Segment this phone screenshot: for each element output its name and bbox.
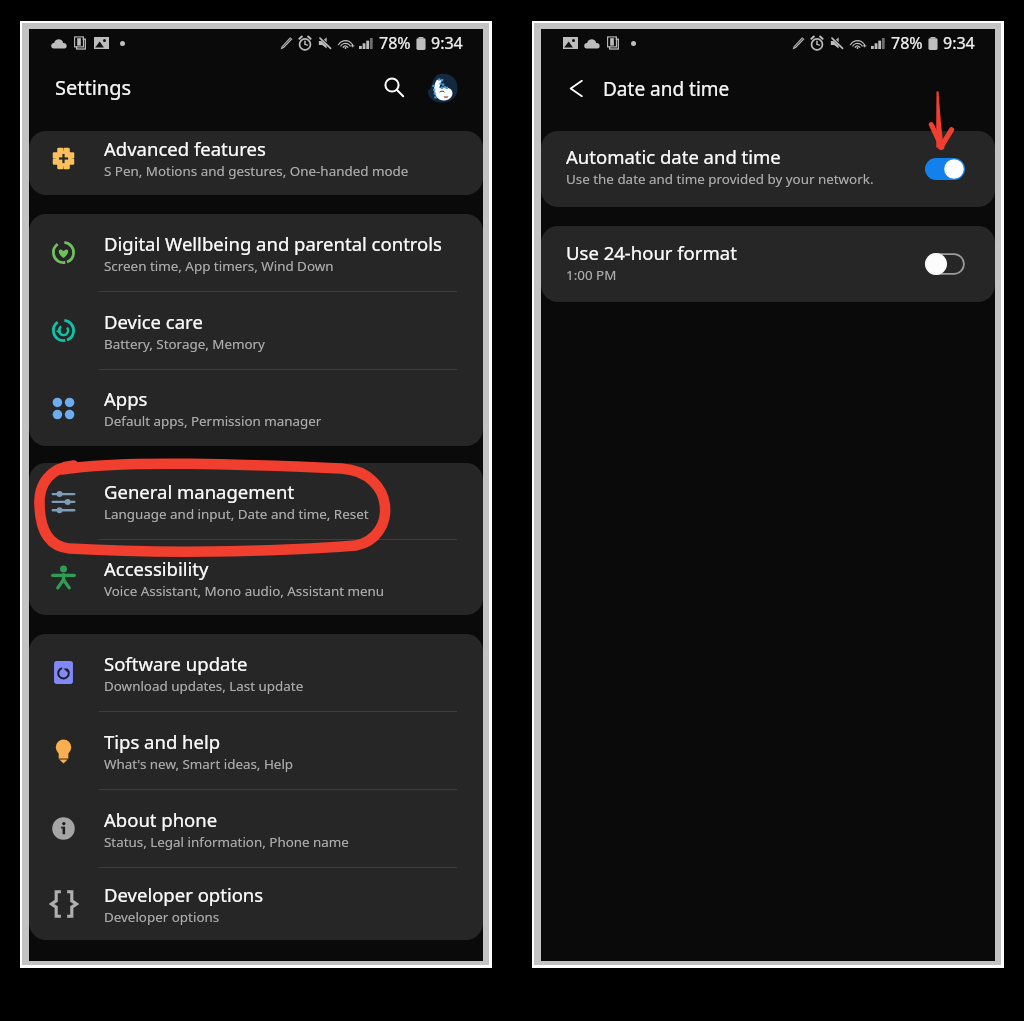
staticText: What's new, Smart ideas, Help <box>104 755 294 773</box>
staticText: Developer options <box>104 882 264 907</box>
staticText: 78% <box>891 32 923 54</box>
staticText: Use the date and time provided by your n… <box>566 170 874 188</box>
button[interactable]: Date and time <box>603 65 753 113</box>
button[interactable]: Back <box>552 64 600 112</box>
button[interactable]: Switch on <box>925 158 965 180</box>
staticText: Accessibility <box>104 556 209 581</box>
staticText: 9:34 <box>943 32 975 54</box>
button[interactable]: Search <box>370 63 418 111</box>
staticText: Device care <box>104 309 203 334</box>
staticText: Advanced features <box>104 136 266 161</box>
staticText: Settings <box>55 74 132 101</box>
button[interactable]: Software update <box>29 634 483 711</box>
button[interactable]: Tips and help <box>29 712 483 789</box>
staticText: About phone <box>104 807 218 832</box>
staticText: Digital Wellbeing and parental controls <box>104 231 442 256</box>
staticText: Default apps, Permission manager <box>104 412 322 430</box>
staticText: Download updates, Last update <box>104 677 304 695</box>
staticText: Screen time, App timers, Wind Down <box>104 257 334 275</box>
button[interactable]: About phone <box>29 790 483 867</box>
staticText: Automatic date and time <box>566 144 781 169</box>
button[interactable]: Accessibility <box>29 540 483 615</box>
staticText: 78% <box>379 32 411 54</box>
staticText: Software update <box>104 651 248 676</box>
staticText: Apps <box>104 386 148 411</box>
button[interactable]: Device care <box>29 292 483 369</box>
button[interactable]: Use 24-hour format <box>566 226 965 302</box>
staticText: 9:34 <box>431 32 463 54</box>
button[interactable]: Developer options <box>29 868 483 940</box>
staticText: Battery, Storage, Memory <box>104 335 265 353</box>
staticText: Status, Legal information, Phone name <box>104 833 349 851</box>
button[interactable]: Advanced features <box>29 131 483 195</box>
button[interactable]: Apps <box>29 370 483 446</box>
staticText: Date and time <box>603 76 730 102</box>
staticText: Use 24-hour format <box>566 240 737 265</box>
button[interactable]: Switch off <box>925 253 965 275</box>
button[interactable]: Automatic date and time <box>566 131 965 207</box>
button[interactable]: Settings <box>55 63 165 111</box>
button[interactable]: Profile <box>418 64 466 112</box>
staticText: Developer options <box>104 908 220 926</box>
button[interactable]: General management <box>29 463 483 539</box>
staticText: 1:00 PM <box>566 266 617 284</box>
staticText: S Pen, Motions and gestures, One-handed … <box>104 162 409 180</box>
staticText: Tips and help <box>104 729 221 754</box>
staticText: Language and input, Date and time, Reset <box>104 505 369 523</box>
button[interactable]: Digital Wellbeing and parental controls <box>29 214 483 291</box>
staticText: Voice Assistant, Mono audio, Assistant m… <box>104 582 385 600</box>
staticText: General management <box>104 479 295 504</box>
